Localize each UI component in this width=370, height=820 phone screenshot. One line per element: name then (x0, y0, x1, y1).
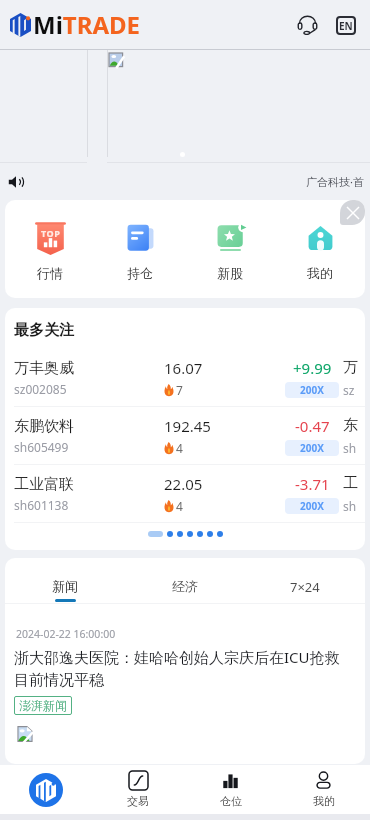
button[interactable]: 持仓 (95, 221, 185, 281)
staticText: MiTRADE (33, 8, 141, 41)
button[interactable]: Sound (6, 172, 26, 192)
staticText: 最多关注 (14, 321, 74, 340)
staticText: 行情 (37, 265, 63, 281)
staticText: 4 (176, 440, 183, 456)
staticText: 7×24 (290, 578, 320, 596)
staticText: 2024-02-22 16:00:00 (16, 627, 116, 641)
staticText: 万丰奥威 (14, 359, 74, 378)
button[interactable]: 工业富联 (5, 465, 365, 523)
staticText: 我的 (307, 265, 333, 281)
button[interactable]: Language EN (332, 11, 360, 39)
staticText: 我的 (313, 794, 335, 808)
button[interactable]: 新闻 (5, 558, 125, 603)
staticText: sh (343, 498, 357, 514)
button[interactable]: 7×24 (245, 558, 365, 603)
staticText: sh601138 (14, 497, 69, 513)
staticText: 工 (343, 474, 358, 493)
staticText: -0.47 (295, 416, 330, 436)
staticText: 192.45 (164, 416, 211, 436)
button[interactable]: 经济 (125, 558, 245, 603)
button[interactable]: Home (0, 765, 92, 814)
staticText: 万 (343, 358, 358, 377)
button[interactable]: Support (292, 10, 322, 40)
button[interactable]: TOP (5, 221, 95, 281)
button[interactable]: 交易 (92, 765, 184, 814)
staticText: 广合科技·首 (306, 174, 364, 189)
staticText: EN (339, 19, 353, 33)
staticText: 东鹏饮料 (14, 417, 74, 436)
staticText: 22.05 (164, 474, 203, 494)
staticText: 新股 (217, 265, 243, 281)
staticText: 经济 (172, 578, 198, 594)
staticText: 4 (176, 498, 183, 514)
staticText: TOP (41, 227, 61, 239)
staticText: 仓位 (220, 794, 242, 808)
staticText: 200X (300, 441, 324, 455)
staticText: +9.99 (293, 358, 332, 378)
staticText: 新闻 (52, 578, 78, 594)
staticText: sz002085 (14, 381, 67, 397)
staticText: 澎湃新闻 (19, 698, 67, 713)
staticText: 交易 (127, 794, 149, 808)
staticText: 200X (300, 499, 324, 513)
button[interactable]: 新股 (185, 221, 275, 281)
staticText: sh605499 (14, 439, 69, 455)
staticText: 16.07 (164, 358, 203, 378)
button[interactable]: 东鹏饮料 (5, 407, 365, 465)
button[interactable]: 我的 (277, 765, 370, 814)
staticText: 7 (176, 382, 183, 398)
staticText: sh (343, 440, 357, 456)
staticText: 东 (343, 416, 358, 435)
staticText: 200X (300, 383, 324, 397)
button[interactable]: 万丰奥威 (5, 349, 365, 407)
button[interactable]: 仓位 (184, 765, 277, 814)
staticText: 浙大邵逸夫医院：娃哈哈创始人宗庆后在ICU抢救目前情况平稳 (14, 647, 343, 690)
button[interactable]: 我的 (275, 221, 365, 281)
staticText: sz (343, 382, 355, 398)
button[interactable]: Close (340, 200, 365, 225)
staticText: 持仓 (127, 265, 153, 281)
staticText: -3.71 (295, 474, 330, 494)
staticText: 工业富联 (14, 475, 74, 494)
